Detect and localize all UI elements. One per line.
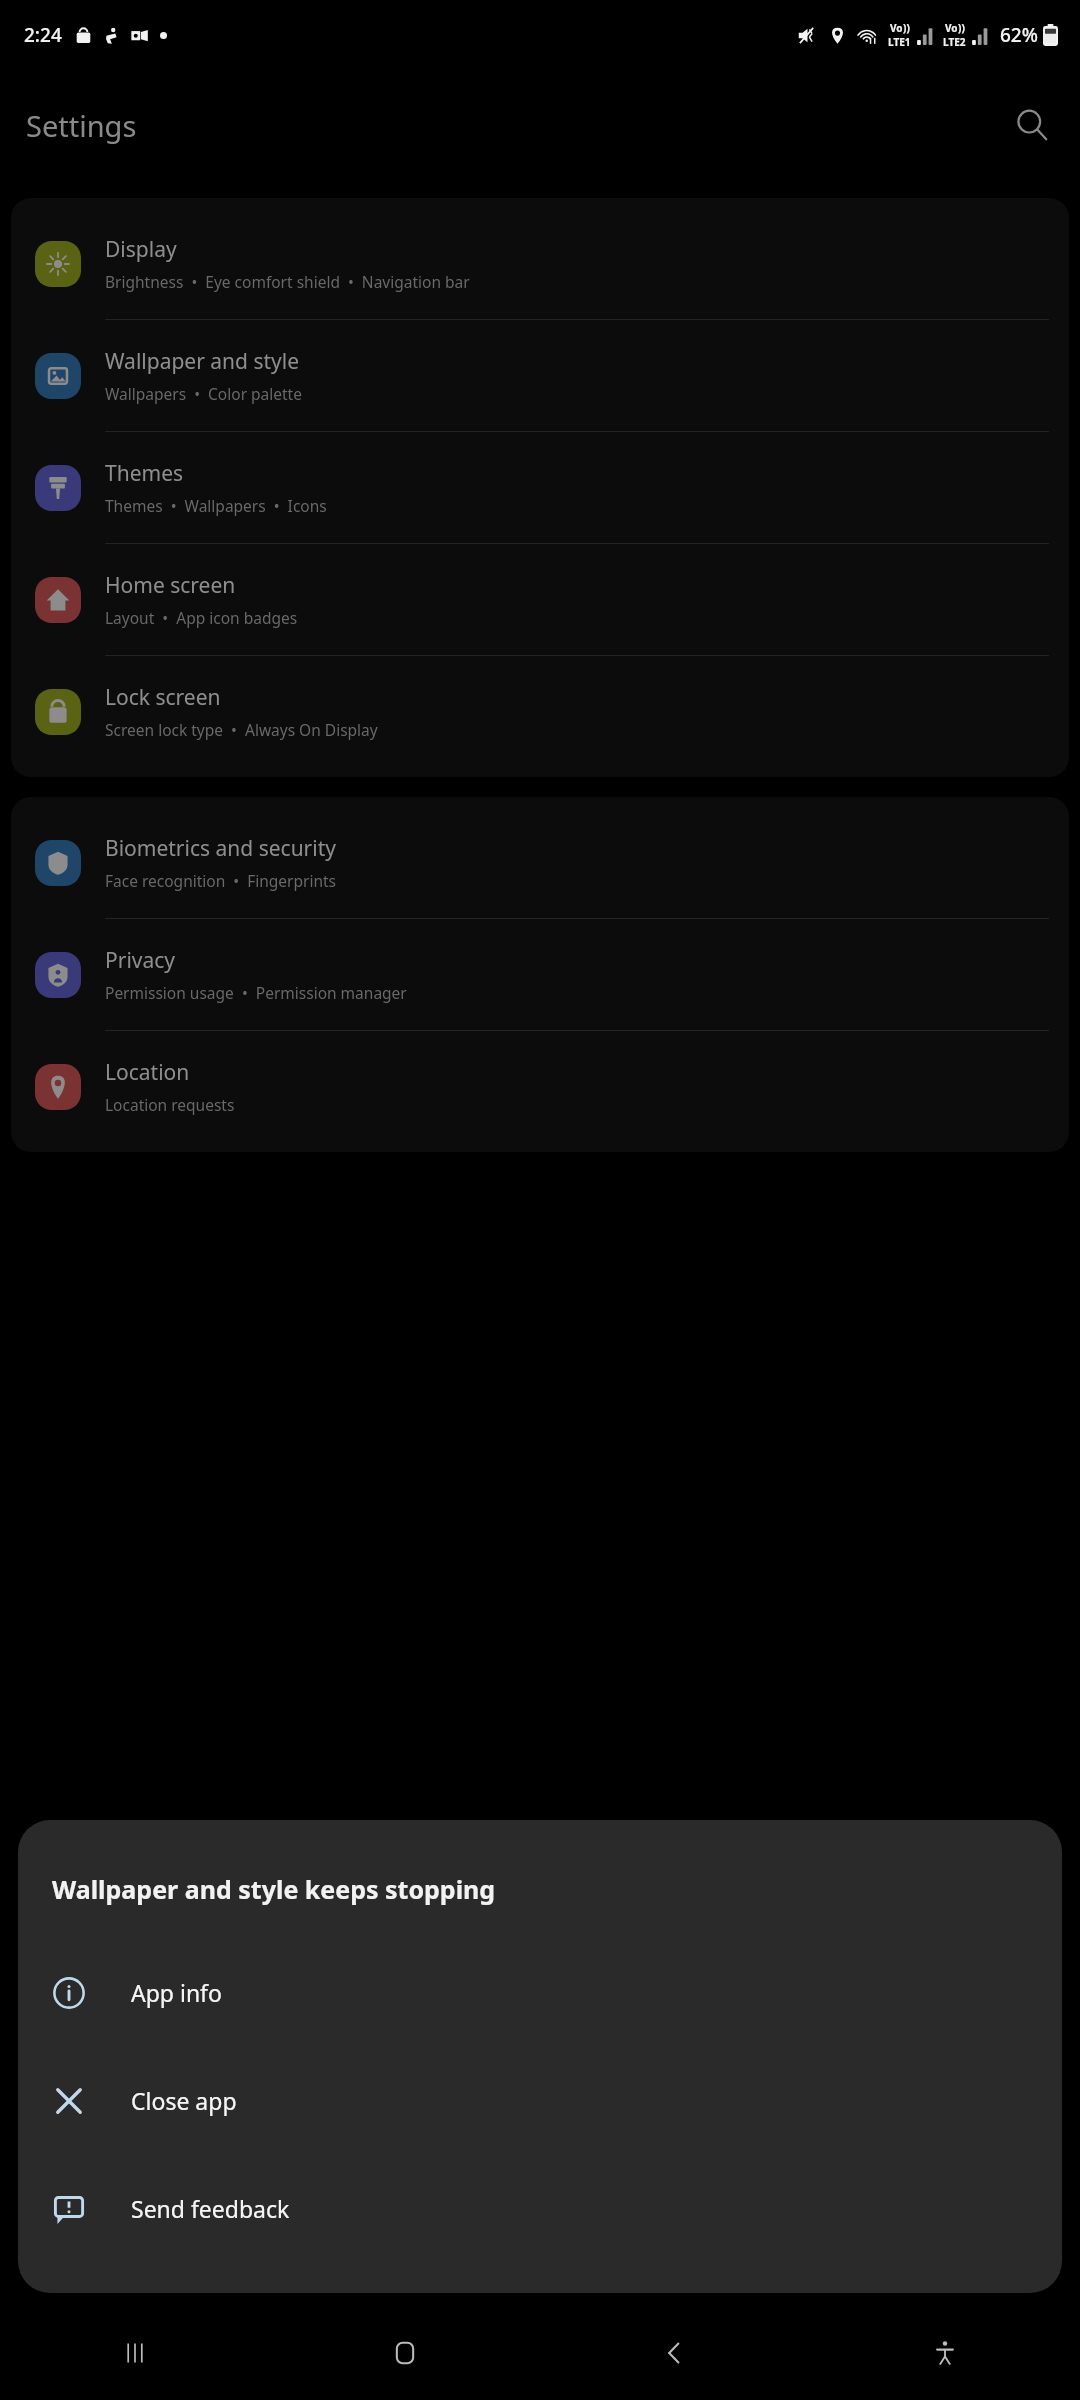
- staticText: Vo: [945, 21, 958, 35]
- button[interactable]: Accessibility: [810, 2305, 1080, 2400]
- button[interactable]: Back: [540, 2305, 810, 2400]
- staticText: Privacy: [105, 946, 176, 975]
- staticText: 62%: [1000, 22, 1038, 48]
- staticText: )): [958, 21, 965, 35]
- staticText: Wallpaper and style keeps stopping: [52, 1872, 496, 1906]
- staticText: Location requests: [105, 1094, 235, 1115]
- button[interactable]: Home screen: [11, 544, 1069, 656]
- staticText: Themes • Wallpapers • Icons: [105, 495, 327, 516]
- button[interactable]: Biometrics and security: [11, 807, 1069, 919]
- staticText: Wallpaper and style: [105, 347, 300, 376]
- button[interactable]: Privacy: [11, 919, 1069, 1031]
- button[interactable]: Close app: [18, 2058, 1062, 2143]
- staticText: Settings: [26, 106, 137, 145]
- staticText: Brightness • Eye comfort shield • Naviga…: [105, 271, 470, 292]
- staticText: Layout • App icon badges: [105, 607, 298, 628]
- staticText: Close app: [131, 2085, 237, 2116]
- staticText: LTE1: [888, 35, 911, 49]
- staticText: Lock screen: [105, 683, 221, 712]
- staticText: Wallpapers • Color palette: [105, 383, 302, 404]
- staticText: )): [903, 21, 910, 35]
- button[interactable]: App info: [18, 1950, 1062, 2035]
- staticText: 2:24: [24, 22, 62, 48]
- button[interactable]: Lock screen: [11, 656, 1069, 767]
- staticText: Display: [105, 235, 177, 264]
- staticText: Screen lock type • Always On Display: [105, 719, 378, 740]
- button[interactable]: Wallpaper and style: [11, 320, 1069, 432]
- button[interactable]: Send feedback: [18, 2166, 1062, 2251]
- staticText: Location: [105, 1058, 190, 1087]
- staticText: LTE2: [943, 35, 966, 49]
- button[interactable]: Display: [11, 208, 1069, 320]
- staticText: Biometrics and security: [105, 834, 336, 863]
- button[interactable]: Recents: [0, 2305, 270, 2400]
- staticText: Send feedback: [131, 2193, 290, 2224]
- button[interactable]: Location: [11, 1031, 1069, 1142]
- button[interactable]: Home: [270, 2305, 540, 2400]
- staticText: Face recognition • Fingerprints: [105, 870, 337, 891]
- staticText: Vo: [890, 21, 903, 35]
- staticText: App info: [131, 1977, 222, 2008]
- button[interactable]: Themes: [11, 432, 1069, 544]
- staticText: Home screen: [105, 571, 236, 600]
- button[interactable]: Search: [1006, 99, 1058, 151]
- staticText: Permission usage • Permission manager: [105, 982, 407, 1003]
- staticText: Themes: [105, 459, 184, 488]
